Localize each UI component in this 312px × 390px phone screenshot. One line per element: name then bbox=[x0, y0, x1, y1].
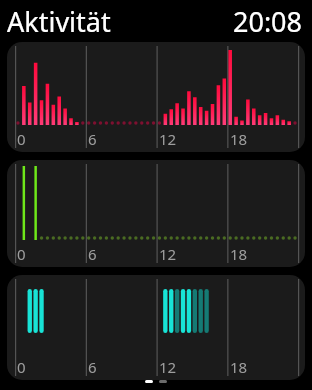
staticText: 12 bbox=[159, 244, 177, 264]
staticText: 0 bbox=[17, 357, 26, 377]
button[interactable]: Aktivitätsdiagramm bbox=[7, 160, 305, 267]
staticText: 0 bbox=[17, 129, 26, 149]
staticText: 12 bbox=[159, 357, 177, 377]
staticText: Aktivität bbox=[7, 3, 111, 40]
staticText: 6 bbox=[88, 129, 97, 149]
button[interactable]: Herzfrequenz Diagramm bbox=[7, 42, 305, 152]
staticText: 20:08 bbox=[233, 3, 303, 40]
staticText: 12 bbox=[159, 129, 177, 149]
staticText: 18 bbox=[230, 129, 248, 149]
staticText: 0 bbox=[17, 244, 26, 264]
staticText: 18 bbox=[230, 357, 248, 377]
button[interactable]: Schlafdiagramm bbox=[7, 275, 305, 380]
staticText: 6 bbox=[88, 244, 97, 264]
staticText: 18 bbox=[230, 244, 248, 264]
staticText: 6 bbox=[88, 357, 97, 377]
